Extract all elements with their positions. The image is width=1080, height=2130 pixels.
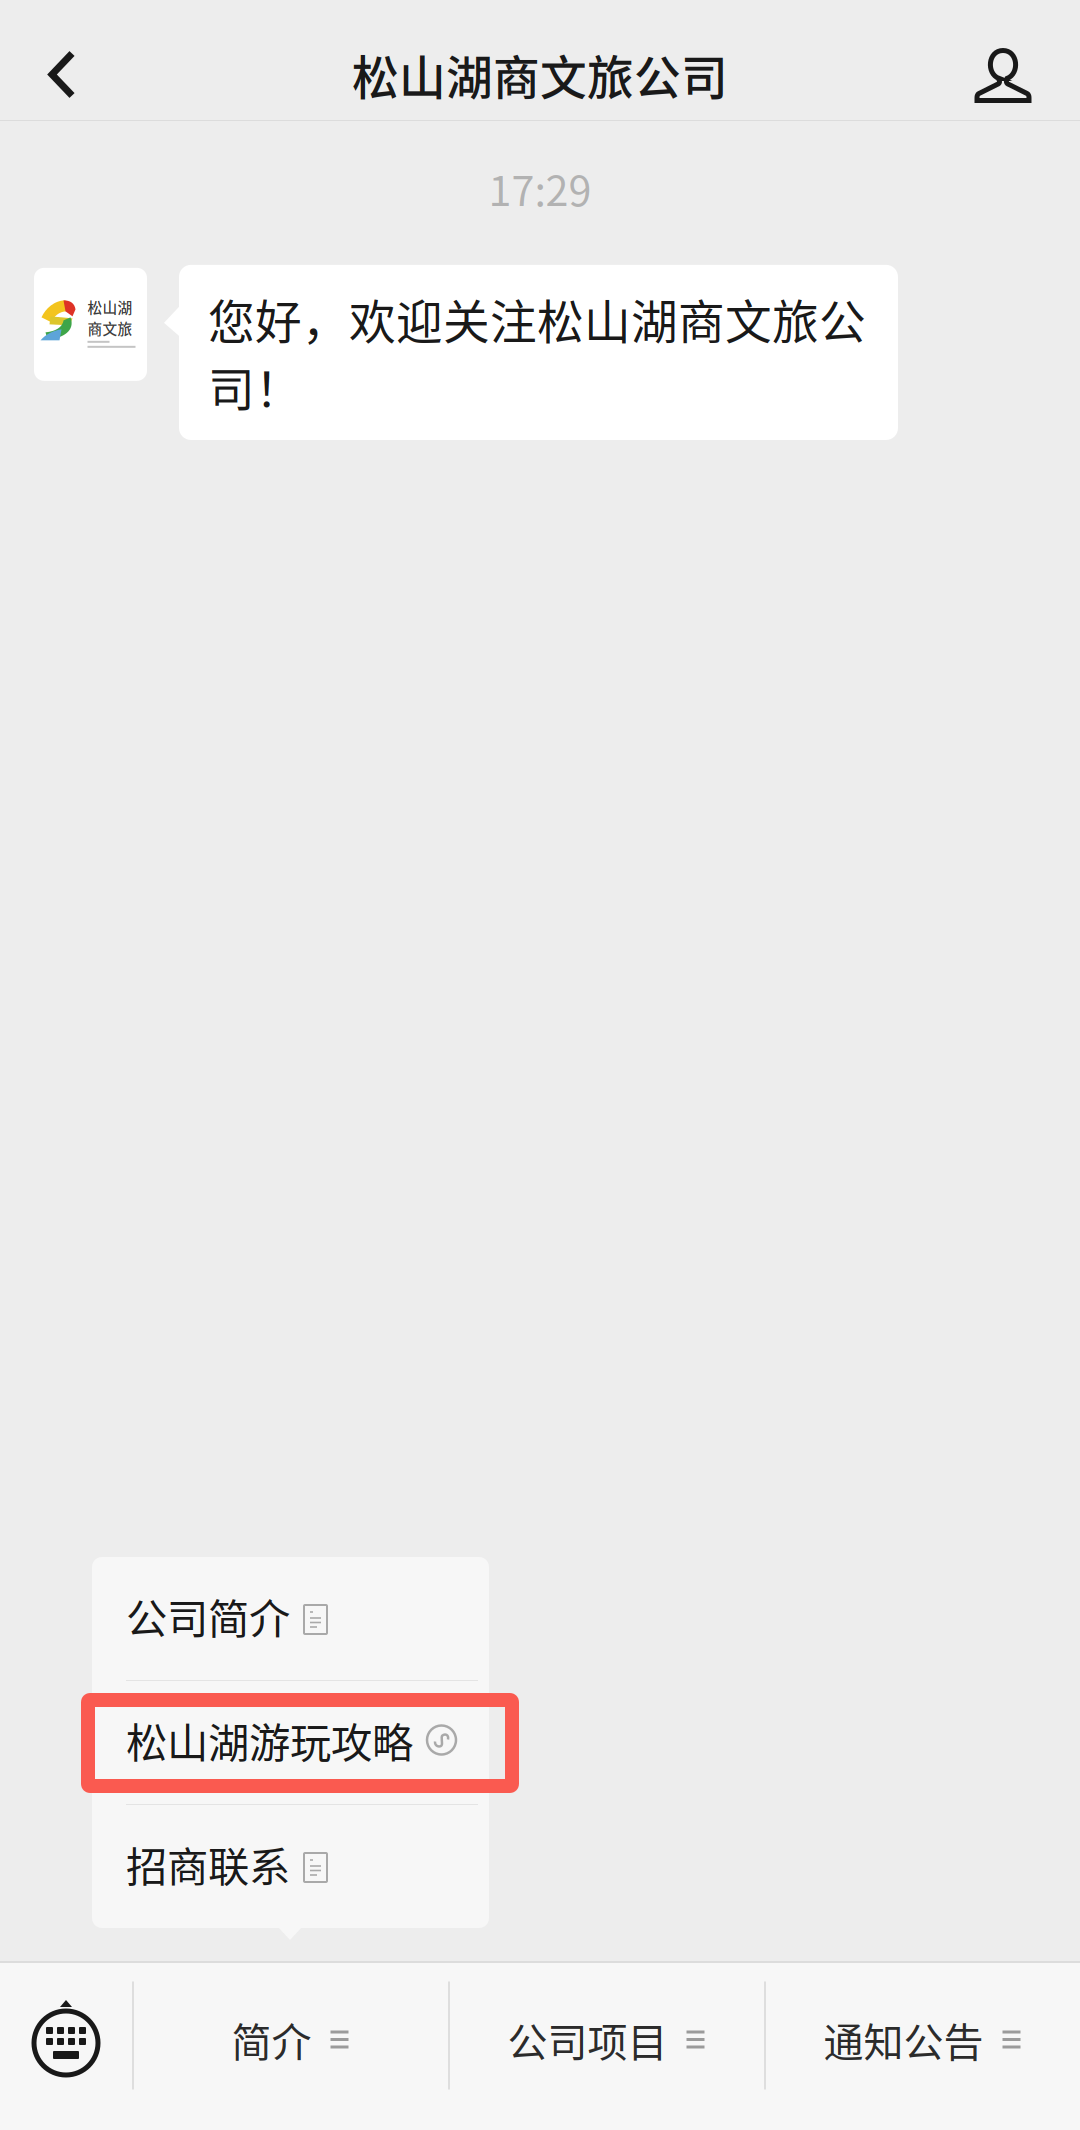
button[interactable]: 松山湖游玩攻略	[92, 1681, 489, 1804]
staticText: 通知公告	[823, 2010, 983, 2068]
staticText: 松山湖商文旅公司	[352, 41, 728, 108]
staticText: 公司简介	[126, 1586, 290, 1646]
button[interactable]: 简介	[132, 1961, 448, 2130]
staticText: 松山湖游玩攻略	[126, 1710, 413, 1770]
button[interactable]: 通知公告	[764, 1961, 1080, 2130]
button[interactable]: Keyboard	[0, 1961, 132, 2130]
staticText: 松山湖	[87, 296, 132, 318]
button[interactable]: 公司简介	[92, 1557, 489, 1680]
staticText: 17:29	[488, 158, 591, 218]
button[interactable]: Contact	[926, 28, 1080, 121]
staticText: 简介	[231, 2010, 311, 2068]
staticText: 公司项目	[507, 2010, 667, 2068]
staticText: 招商联系	[126, 1834, 290, 1894]
button[interactable]: 公司项目	[448, 1961, 764, 2130]
button[interactable]: Back	[0, 28, 124, 121]
button[interactable]: 招商联系	[92, 1805, 489, 1928]
staticText: 您好，欢迎关注松山湖商文旅公司！	[208, 285, 866, 420]
staticText: 商文旅	[87, 318, 132, 339]
